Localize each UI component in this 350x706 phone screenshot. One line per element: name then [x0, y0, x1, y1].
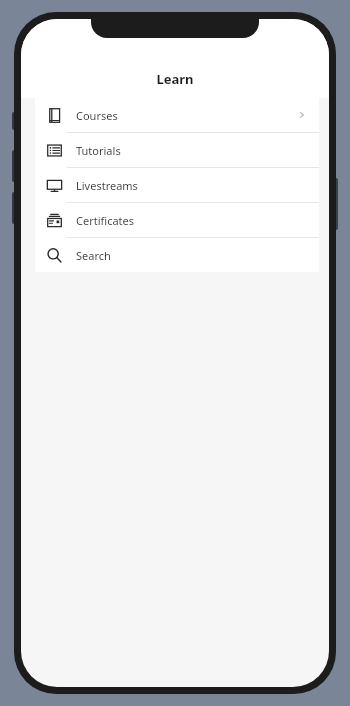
staticText: Certificates: [76, 213, 135, 228]
button[interactable]: Courses: [35, 98, 319, 132]
button[interactable]: Certificates: [35, 203, 319, 237]
staticText: Tutorials: [76, 143, 121, 158]
staticText: Livestreams: [76, 178, 138, 193]
button[interactable]: Livestreams: [35, 168, 319, 202]
button[interactable]: Search: [35, 238, 319, 272]
button[interactable]: Tutorials: [35, 133, 319, 167]
staticText: Search: [76, 248, 111, 263]
staticText: Courses: [76, 108, 118, 123]
staticText: Learn: [156, 70, 194, 88]
